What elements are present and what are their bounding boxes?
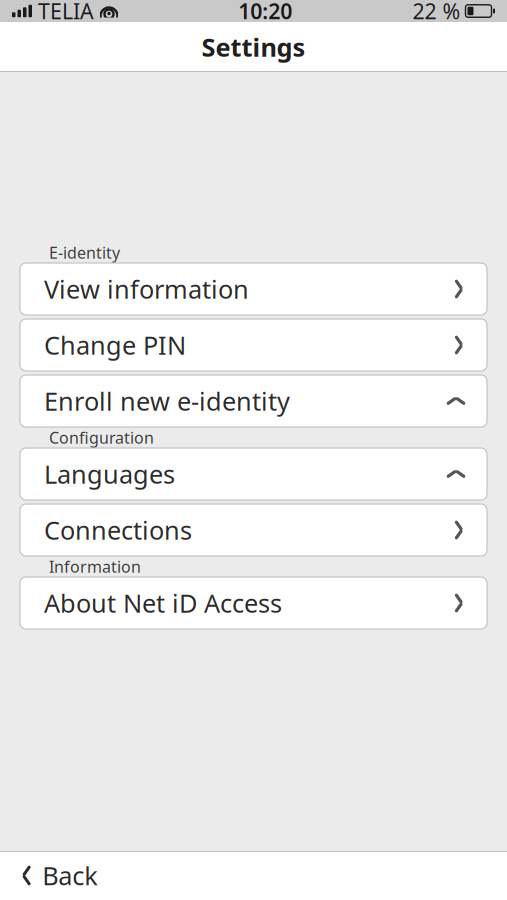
button[interactable]: About Net iD Access: [20, 577, 487, 629]
button[interactable]: Change PIN: [20, 319, 487, 371]
staticText: Settings: [201, 30, 305, 64]
staticText: Back: [42, 859, 98, 892]
staticText: Information: [49, 556, 141, 577]
staticText: E-identity: [49, 242, 120, 263]
staticText: TELIA: [38, 0, 94, 25]
staticText: Enroll new e-identity: [44, 384, 290, 418]
button[interactable]: Back: [0, 851, 112, 899]
staticText: 10:20: [238, 0, 292, 25]
staticText: View information: [44, 272, 249, 306]
button[interactable]: Connections: [20, 504, 487, 556]
staticText: About Net iD Access: [44, 586, 282, 620]
staticText: Connections: [44, 513, 192, 547]
staticText: Change PIN: [44, 328, 186, 362]
staticText: 22 %: [412, 0, 460, 25]
button[interactable]: Languages: [20, 448, 487, 500]
button[interactable]: Enroll new e-identity: [20, 375, 487, 427]
staticText: Languages: [44, 457, 175, 491]
staticText: Configuration: [49, 427, 154, 448]
button[interactable]: View information: [20, 263, 487, 315]
